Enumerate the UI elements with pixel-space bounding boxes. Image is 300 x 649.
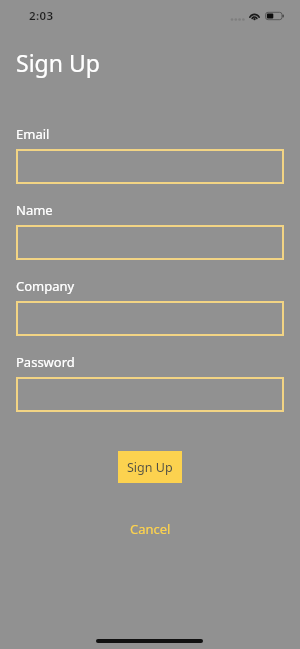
button[interactable]: Sign Up xyxy=(118,451,182,483)
staticText: Email xyxy=(16,125,50,143)
staticText: 2:03 xyxy=(29,8,54,24)
button[interactable]: Company xyxy=(16,301,284,336)
other: Battery xyxy=(265,11,286,21)
other: Cellular signal xyxy=(230,16,246,24)
staticText: Company xyxy=(16,277,75,295)
button[interactable]: Name xyxy=(16,225,284,260)
button[interactable]: Email xyxy=(16,149,284,184)
staticText: Sign Up xyxy=(16,47,100,78)
staticText: Password xyxy=(16,353,75,371)
staticText: Name xyxy=(16,201,53,219)
staticText: Cancel xyxy=(130,520,171,538)
button[interactable]: Password xyxy=(16,377,284,412)
other: Wi-Fi xyxy=(248,10,262,21)
button[interactable]: Cancel xyxy=(120,517,180,540)
staticText: Sign Up xyxy=(127,459,173,476)
